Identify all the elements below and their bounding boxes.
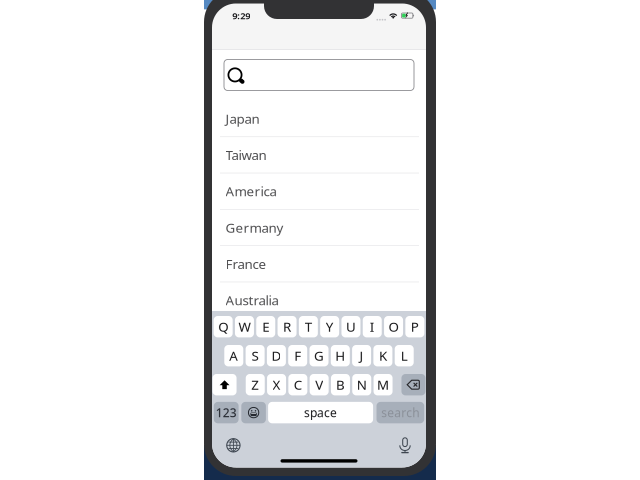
button[interactable]: space [268, 402, 373, 423]
button[interactable]: B [331, 374, 350, 395]
staticText: P [411, 318, 419, 335]
staticText: B [336, 376, 345, 393]
staticText: I [370, 318, 375, 335]
button[interactable]: Next keyboard [221, 433, 245, 457]
staticText: U [346, 318, 356, 335]
button[interactable]: J [352, 345, 371, 366]
button[interactable]: Z [246, 374, 265, 395]
button[interactable]: D [267, 345, 286, 366]
staticText: France [226, 255, 267, 273]
button[interactable]: Germany [212, 210, 426, 246]
staticText: N [357, 376, 367, 393]
staticText: T [305, 318, 312, 335]
staticText: A [229, 347, 238, 364]
button[interactable]: A [224, 345, 243, 366]
staticText: 123 [216, 405, 237, 420]
button[interactable]: R [278, 316, 297, 337]
staticText: D [271, 347, 281, 364]
button[interactable]: Japan [212, 101, 426, 137]
staticText: H [335, 347, 345, 364]
button[interactable] [401, 374, 425, 395]
button[interactable]: V [310, 374, 329, 395]
staticText: S [252, 347, 259, 364]
button[interactable]: Taiwan [212, 137, 426, 173]
staticText: Japan [226, 110, 260, 127]
button[interactable]: S [246, 345, 265, 366]
button[interactable]: X [267, 374, 286, 395]
staticText: Germany [226, 219, 284, 236]
button[interactable]: I [363, 316, 382, 337]
staticText: V [315, 376, 323, 393]
staticText: Australia [226, 291, 279, 309]
button[interactable]: Australia [212, 282, 426, 319]
staticText: F [294, 347, 301, 364]
staticText: W [238, 318, 250, 335]
button[interactable]: G [309, 345, 328, 366]
staticText: Q [218, 318, 228, 335]
button[interactable]: Dictation [393, 433, 417, 457]
button[interactable]: M [374, 374, 393, 395]
staticText: X [273, 376, 281, 393]
button[interactable]: America [212, 173, 426, 210]
button[interactable] [241, 402, 266, 423]
button[interactable]: search [376, 402, 424, 423]
button[interactable]: T [299, 316, 318, 337]
staticText: L [401, 347, 408, 364]
staticText: K [379, 347, 387, 364]
button[interactable]: H [331, 345, 350, 366]
button[interactable] [224, 59, 414, 90]
button[interactable]: L [395, 345, 414, 366]
button[interactable]: 123 [214, 402, 239, 423]
staticText: America [226, 182, 277, 200]
staticText: J [360, 347, 364, 364]
button[interactable]: France [212, 246, 426, 282]
button[interactable]: O [384, 316, 403, 337]
button[interactable]: K [373, 345, 392, 366]
staticText: M [377, 376, 389, 393]
button[interactable]: C [288, 374, 307, 395]
staticText: E [262, 318, 269, 335]
staticText: G [314, 347, 324, 364]
staticText: space [304, 405, 337, 420]
button[interactable] [213, 374, 237, 395]
button[interactable]: P [405, 316, 424, 337]
staticText: Z [251, 376, 259, 393]
button[interactable]: N [352, 374, 371, 395]
staticText: O [389, 318, 399, 335]
button[interactable]: E [256, 316, 275, 337]
button[interactable]: Q [214, 316, 233, 337]
button[interactable]: Y [320, 316, 339, 337]
staticText: R [283, 318, 291, 335]
staticText: Y [326, 318, 334, 335]
button[interactable]: W [235, 316, 254, 337]
button[interactable]: F [288, 345, 307, 366]
staticText: search [381, 405, 419, 420]
staticText: 9:29 [232, 9, 250, 22]
staticText: Taiwan [226, 146, 267, 164]
staticText: C [294, 376, 302, 393]
button[interactable]: U [341, 316, 360, 337]
